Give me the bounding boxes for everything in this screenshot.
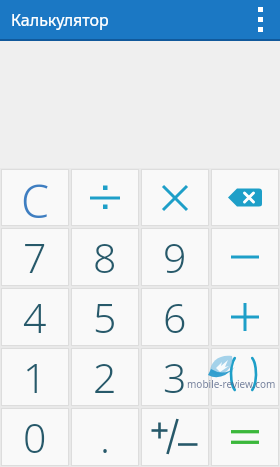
staticText: 4 xyxy=(23,289,47,345)
button[interactable] xyxy=(72,170,138,225)
button[interactable]: 5 xyxy=(72,289,138,345)
button[interactable]: 4 xyxy=(2,289,68,345)
button[interactable]: 7 xyxy=(2,229,68,285)
staticText: 1 xyxy=(23,349,47,405)
staticText: 9 xyxy=(163,229,187,285)
staticText: 6 xyxy=(163,289,187,345)
button[interactable]: 6 xyxy=(142,289,208,345)
button[interactable] xyxy=(142,409,208,465)
button[interactable]: 9 xyxy=(142,229,208,285)
staticText: 8 xyxy=(93,229,117,285)
button[interactable] xyxy=(142,170,208,225)
staticText: 3 xyxy=(163,349,187,405)
staticText: Калькулятор xyxy=(11,9,109,31)
staticText: mobile-review.com xyxy=(187,377,276,391)
button[interactable]: 0 xyxy=(2,409,68,465)
button[interactable]: 2 xyxy=(72,349,138,405)
staticText: 2 xyxy=(93,349,117,405)
button[interactable]: 8 xyxy=(72,229,138,285)
button[interactable] xyxy=(212,229,278,285)
button[interactable] xyxy=(212,409,278,465)
button[interactable]: 3 xyxy=(142,349,208,405)
button[interactable]: 1 xyxy=(2,349,68,405)
button[interactable]: C xyxy=(2,170,68,225)
staticText: 5 xyxy=(93,289,117,345)
button[interactable] xyxy=(258,7,263,32)
staticText: 7 xyxy=(23,229,47,285)
staticText: C xyxy=(21,170,50,225)
button[interactable] xyxy=(212,349,278,405)
staticText: . xyxy=(100,409,111,465)
button[interactable]: . xyxy=(72,409,138,465)
staticText: 0 xyxy=(23,409,47,465)
button[interactable] xyxy=(212,170,278,225)
button[interactable] xyxy=(212,289,278,345)
